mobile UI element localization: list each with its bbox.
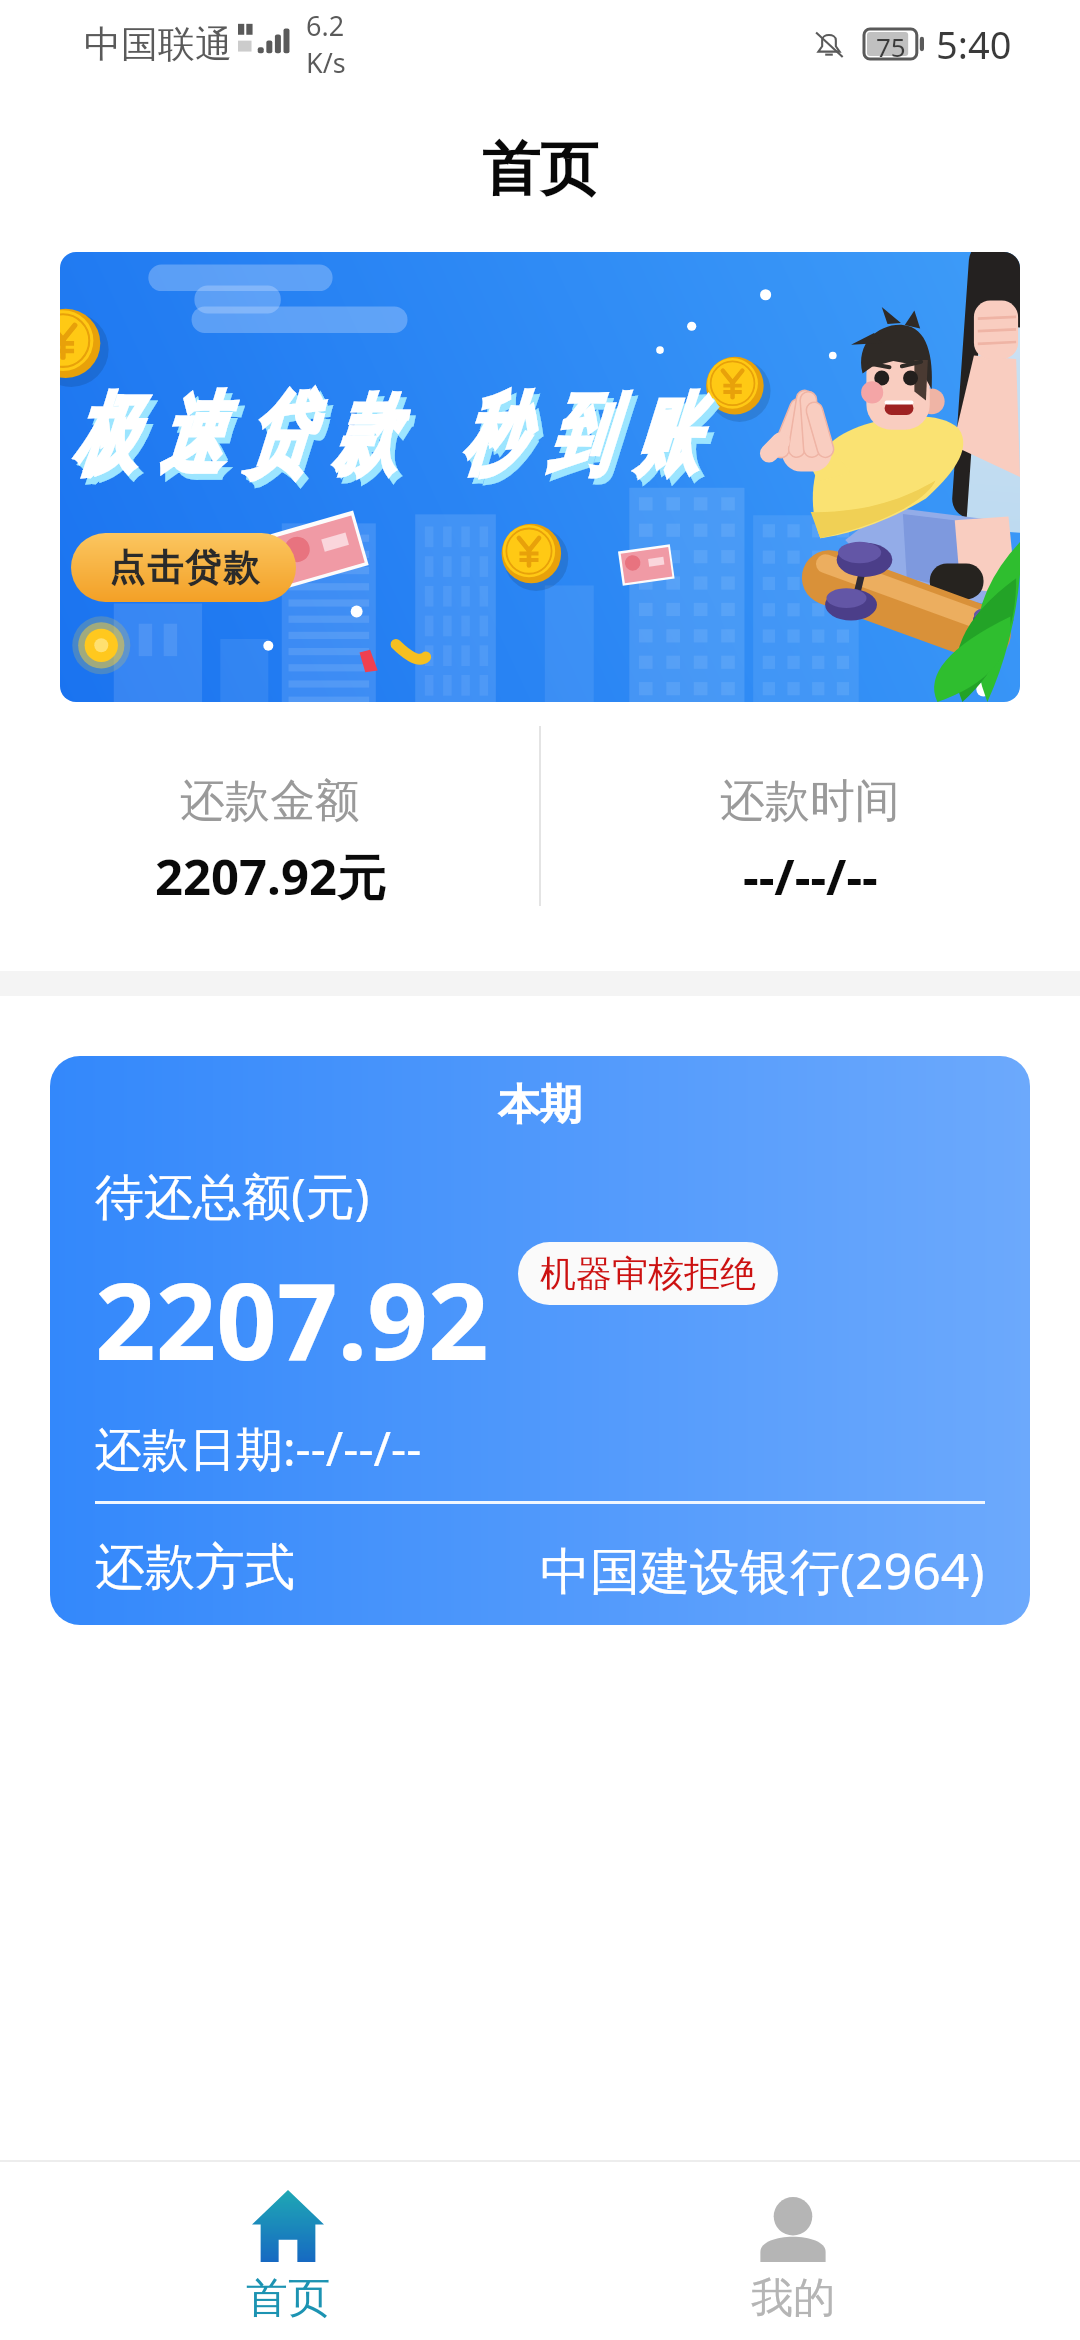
staticText: 75 (876, 29, 906, 59)
staticText: 点击贷款 (108, 545, 260, 590)
button[interactable]: 极速贷款 秒到账 banner (60, 252, 1020, 702)
staticText: 6.2 (306, 7, 345, 44)
staticText: 2207.92 (95, 1247, 489, 1391)
staticText: 极速贷款 秒到账 (73, 371, 722, 491)
staticText: K/s (306, 44, 346, 81)
staticText: 本期 (498, 1079, 582, 1132)
button[interactable]: 机器审核拒绝 (518, 1242, 778, 1305)
button[interactable]: 本期 (50, 1056, 1030, 1625)
staticText: 待还总额(元) (95, 1162, 370, 1229)
staticText: 首页 (246, 2272, 330, 2325)
staticText: 极速贷款 秒到账 (78, 377, 727, 497)
staticText: 中国建设银行(2964) (540, 1536, 985, 1604)
staticText: 首页 (482, 133, 598, 206)
staticText: 2207.92元 (155, 843, 386, 910)
staticText: 还款日期:--/--/-- (95, 1416, 422, 1480)
staticText: 中国联通 (84, 21, 232, 68)
staticText: 5:40 (936, 18, 1012, 70)
button[interactable]: 还款金额 (0, 702, 540, 971)
staticText: 还款金额 (180, 773, 360, 830)
staticText: 还款时间 (720, 773, 900, 830)
staticText: 机器审核拒绝 (540, 1251, 756, 1296)
staticText: --/--/-- (743, 843, 878, 910)
staticText: 我的 (751, 2272, 835, 2325)
button[interactable]: 首页 (35, 2162, 540, 2340)
staticText: 还款方式 (95, 1536, 295, 1599)
button[interactable]: 我的 (540, 2162, 1045, 2340)
button[interactable]: 点击贷款 (71, 533, 296, 602)
button[interactable]: 还款时间 (540, 702, 1080, 971)
